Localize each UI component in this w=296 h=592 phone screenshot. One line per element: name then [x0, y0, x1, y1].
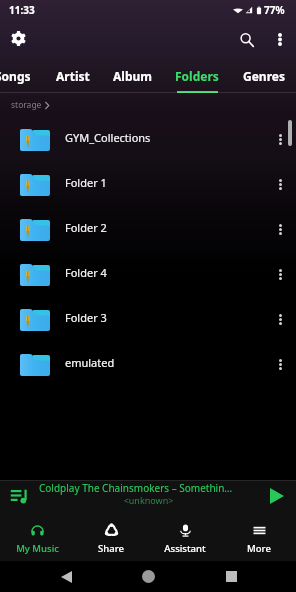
button[interactable]: More options [265, 117, 296, 162]
button[interactable]: Coldplay The Chainsmokers – Somethin… [0, 481, 296, 511]
button[interactable]: Folders [164, 58, 230, 92]
button[interactable]: More options [263, 23, 296, 56]
button[interactable]: emulated [0, 342, 296, 387]
staticText: Folders [175, 68, 219, 84]
staticText: Album [113, 68, 152, 84]
button[interactable]: Assistant [148, 511, 222, 561]
staticText: Share [98, 542, 124, 555]
button[interactable]: Folder 4 [0, 252, 296, 297]
staticText: 77% [264, 3, 285, 17]
staticText: Folder 3 [65, 310, 265, 325]
button[interactable]: Genres [231, 58, 296, 92]
button[interactable]: Share [74, 511, 148, 561]
staticText: More [247, 542, 271, 555]
button[interactable]: Album [99, 58, 165, 92]
staticText: Folder 1 [65, 175, 265, 190]
staticText: 11:33 [9, 3, 35, 17]
staticText: Artist [56, 68, 90, 84]
button[interactable]: Songs [0, 58, 46, 92]
button[interactable]: More [222, 511, 296, 561]
staticText: Songs [0, 68, 31, 84]
staticText: Assistant [164, 542, 206, 555]
button[interactable]: More options [265, 207, 296, 252]
button[interactable]: GYM_Collections [0, 117, 296, 162]
staticText: GYM_Collections [65, 130, 265, 145]
button[interactable]: Folder 3 [0, 297, 296, 342]
staticText: My Music [16, 542, 59, 555]
button[interactable]: Folder 2 [0, 207, 296, 252]
button[interactable]: More options [265, 297, 296, 342]
button[interactable]: storage [11, 99, 49, 111]
button[interactable]: Artist [40, 58, 106, 92]
staticText: Coldplay The Chainsmokers – Somethin… [39, 481, 233, 495]
button[interactable]: My Music [0, 511, 74, 561]
staticText: Folder 2 [65, 220, 265, 235]
button[interactable]: Settings [2, 23, 35, 56]
staticText: storage [11, 99, 42, 111]
staticText: Folder 4 [65, 265, 265, 280]
button[interactable]: Play [262, 481, 292, 511]
button[interactable]: More options [265, 342, 296, 387]
button[interactable]: Recents [214, 561, 248, 592]
staticText: emulated [65, 355, 265, 370]
button[interactable]: Folder 1 [0, 162, 296, 207]
button[interactable]: Back [49, 561, 83, 592]
button[interactable]: More options [265, 162, 296, 207]
button[interactable]: Home [131, 561, 165, 592]
button[interactable]: More options [265, 252, 296, 297]
button[interactable]: Search [230, 23, 263, 56]
staticText: Genres [243, 68, 285, 84]
staticText: <unknown> [39, 494, 258, 506]
